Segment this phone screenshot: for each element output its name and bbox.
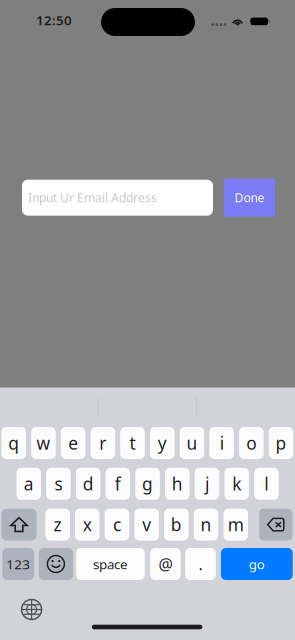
staticText: n — [201, 513, 212, 536]
button[interactable]: m — [223, 509, 248, 541]
button[interactable]: e — [61, 427, 85, 459]
staticText: u — [186, 431, 197, 454]
button[interactable]: g — [135, 468, 160, 500]
staticText: c — [113, 513, 121, 536]
staticText: z — [53, 513, 61, 536]
staticText: 12:50 — [36, 11, 72, 29]
button[interactable]: o — [239, 427, 264, 459]
staticText: f — [115, 472, 121, 495]
staticText: 123 — [6, 555, 30, 573]
staticText: g — [142, 472, 153, 495]
staticText: m — [228, 513, 244, 536]
staticText: . — [198, 553, 202, 575]
button[interactable]: s — [46, 468, 71, 500]
staticText: o — [246, 431, 256, 454]
button[interactable]: p — [269, 427, 293, 459]
staticText: q — [8, 431, 19, 454]
staticText: j — [205, 472, 209, 495]
button[interactable]: . — [185, 548, 216, 580]
staticText: t — [130, 431, 136, 454]
button[interactable]: space — [76, 548, 145, 580]
button[interactable]: x — [75, 509, 99, 541]
button[interactable]: Emoji — [39, 548, 73, 580]
button[interactable]: f — [106, 468, 130, 500]
button[interactable]: j — [195, 468, 219, 500]
staticText: @ — [158, 553, 172, 575]
button[interactable]: @ — [150, 548, 181, 580]
staticText: Input Ur Email Address — [28, 190, 157, 206]
staticText: b — [171, 513, 182, 536]
staticText: space — [93, 555, 128, 573]
staticText: go — [249, 555, 265, 573]
button[interactable]: k — [224, 468, 249, 500]
button[interactable]: r — [91, 427, 115, 459]
button[interactable]: Delete — [259, 509, 293, 541]
staticText: s — [54, 472, 62, 495]
button[interactable]: h — [165, 468, 189, 500]
button[interactable]: Done — [224, 179, 275, 217]
staticText: k — [232, 472, 241, 495]
staticText: x — [83, 513, 92, 536]
button[interactable]: a — [16, 468, 41, 500]
button[interactable]: w — [31, 427, 56, 459]
button[interactable]: v — [134, 509, 159, 541]
button[interactable]: l — [254, 468, 279, 500]
button[interactable]: n — [194, 509, 218, 541]
button[interactable]: z — [45, 509, 70, 541]
staticText: d — [83, 472, 94, 495]
staticText: a — [24, 472, 34, 495]
staticText: v — [142, 513, 151, 536]
button[interactable]: Next keyboard — [22, 599, 42, 619]
button[interactable]: y — [150, 427, 174, 459]
button[interactable]: u — [180, 427, 204, 459]
button[interactable]: go — [221, 548, 293, 580]
staticText: l — [264, 472, 268, 495]
staticText: w — [36, 431, 50, 454]
staticText: h — [172, 472, 183, 495]
button[interactable]: Shift — [1, 509, 36, 541]
button[interactable]: c — [105, 509, 129, 541]
button[interactable]: i — [209, 427, 234, 459]
button[interactable]: 123 — [2, 548, 34, 580]
staticText: r — [99, 431, 106, 454]
staticText: e — [68, 431, 78, 454]
staticText: Done — [234, 190, 264, 206]
button[interactable]: d — [76, 468, 100, 500]
button[interactable]: t — [120, 427, 145, 459]
staticText: y — [158, 431, 167, 454]
button[interactable]: b — [164, 509, 189, 541]
staticText: i — [220, 431, 224, 454]
button[interactable]: q — [1, 427, 26, 459]
staticText: p — [275, 431, 286, 454]
